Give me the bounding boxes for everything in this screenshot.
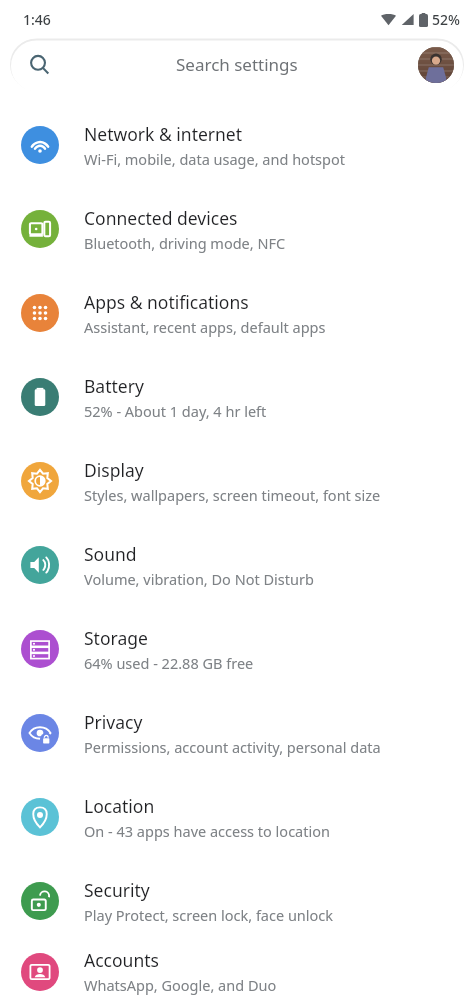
button[interactable]: Connected devices [0, 187, 474, 271]
button[interactable]: Apps & notifications [0, 271, 474, 355]
staticText: Location [84, 794, 155, 818]
staticText: Privacy [84, 710, 143, 734]
button[interactable]: Sound [0, 523, 474, 607]
staticText: 1:46 [23, 10, 51, 29]
staticText: Security [84, 878, 150, 902]
button[interactable]: Location [0, 775, 474, 859]
button[interactable]: Battery [0, 355, 474, 439]
staticText: Accounts [84, 948, 159, 972]
staticText: 64% used - 22.88 GB free [84, 653, 254, 673]
staticText: Bluetooth, driving mode, NFC [84, 233, 286, 253]
staticText: Styles, wallpapers, screen timeout, font… [84, 485, 381, 505]
staticText: Storage [84, 626, 148, 650]
staticText: Permissions, account activity, personal … [84, 737, 381, 757]
staticText: WhatsApp, Google, and Duo [84, 975, 277, 995]
button[interactable]: Privacy [0, 691, 474, 775]
staticText: 52% [432, 10, 460, 29]
button[interactable]: Search [10, 38, 464, 91]
staticText: Network & internet [84, 122, 243, 146]
staticText: Search settings [176, 53, 298, 76]
button[interactable]: Storage [0, 607, 474, 691]
staticText: Connected devices [84, 206, 238, 230]
staticText: Apps & notifications [84, 290, 249, 314]
staticText: Sound [84, 542, 137, 566]
button[interactable]: Security [0, 859, 474, 943]
staticText: Assistant, recent apps, default apps [84, 317, 326, 337]
staticText: Battery [84, 374, 144, 398]
staticText: 52% - About 1 day, 4 hr left [84, 401, 267, 421]
staticText: Display [84, 458, 144, 482]
button[interactable]: Account [418, 47, 454, 83]
other: Search [29, 54, 50, 75]
staticText: Play Protect, screen lock, face unlock [84, 905, 334, 925]
button[interactable]: Display [0, 439, 474, 523]
staticText: Wi-Fi, mobile, data usage, and hotspot [84, 149, 345, 169]
button[interactable]: Accounts [0, 943, 474, 1000]
button[interactable]: Network & internet [0, 103, 474, 187]
staticText: On - 43 apps have access to location [84, 821, 330, 841]
staticText: Volume, vibration, Do Not Disturb [84, 569, 314, 589]
